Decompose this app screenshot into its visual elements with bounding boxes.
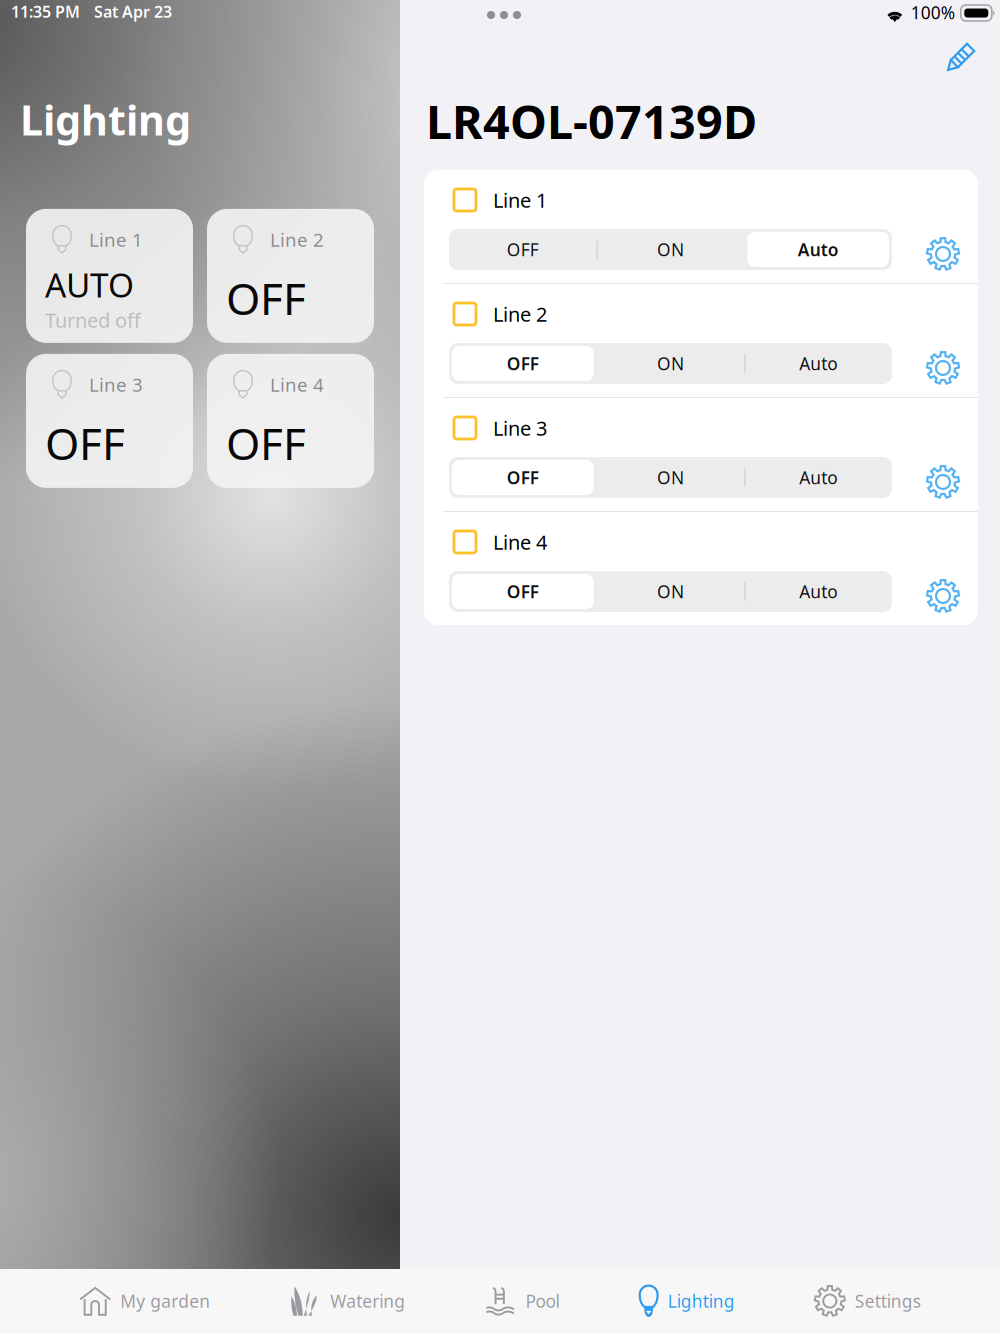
staticText: OFF xyxy=(45,414,125,472)
staticText: Auto xyxy=(798,238,839,261)
button[interactable]: Line 2 xyxy=(207,209,374,343)
button[interactable]: Line 1 xyxy=(26,209,193,343)
button[interactable]: Auto xyxy=(744,343,892,384)
staticText: Line 2 xyxy=(493,301,547,327)
staticText: Lighting xyxy=(20,92,191,147)
button[interactable]: Auto xyxy=(744,229,892,270)
button[interactable]: Edit xyxy=(939,35,983,79)
staticText: OFF xyxy=(507,238,539,261)
button[interactable]: Pool xyxy=(484,1269,559,1333)
staticText: LR4OL-07139D xyxy=(426,90,757,152)
staticText: Watering xyxy=(330,1289,405,1312)
button[interactable]: ON xyxy=(597,457,744,498)
staticText: Turned off xyxy=(45,307,141,333)
staticText: My garden xyxy=(120,1289,210,1312)
button[interactable]: OFF xyxy=(449,457,597,498)
staticText: Sat Apr 23 xyxy=(94,1,172,22)
button[interactable]: Settings for Line 1 xyxy=(926,237,960,271)
staticText: Line 3 xyxy=(89,372,143,397)
button[interactable]: Settings for Line 3 xyxy=(926,465,960,499)
staticText: OFF xyxy=(507,580,539,603)
button[interactable]: ON xyxy=(597,571,744,612)
staticText: AUTO xyxy=(45,262,134,307)
staticText: OFF xyxy=(507,352,539,375)
button[interactable]: Line 3 xyxy=(26,354,193,488)
button[interactable]: OFF xyxy=(449,571,597,612)
button[interactable]: Auto xyxy=(744,457,892,498)
button[interactable]: Settings for Line 2 xyxy=(926,351,960,385)
staticText: Settings xyxy=(855,1289,921,1312)
staticText: Line 2 xyxy=(270,227,324,252)
button[interactable]: OFF xyxy=(449,343,597,384)
button[interactable]: Settings xyxy=(814,1269,921,1333)
staticText: Auto xyxy=(799,352,837,375)
button[interactable]: ON xyxy=(597,229,744,270)
staticText: ON xyxy=(657,238,684,261)
staticText: OFF xyxy=(507,466,539,489)
button[interactable]: OFF xyxy=(449,229,597,270)
staticText: 11:35 PM xyxy=(11,1,80,22)
staticText: Line 1 xyxy=(493,187,547,213)
button[interactable]: ON xyxy=(597,343,744,384)
button[interactable]: Lighting xyxy=(639,1269,735,1333)
staticText: Line 4 xyxy=(270,372,324,397)
button[interactable]: Auto xyxy=(744,571,892,612)
button[interactable]: Watering xyxy=(289,1269,405,1333)
staticText: 100% xyxy=(911,1,955,24)
staticText: Pool xyxy=(525,1289,559,1312)
staticText: Lighting xyxy=(668,1289,735,1312)
staticText: ON xyxy=(657,352,684,375)
staticText: OFF xyxy=(226,414,306,472)
button[interactable]: Settings for Line 4 xyxy=(926,579,960,613)
button[interactable]: Line 4 xyxy=(207,354,374,488)
staticText: Line 1 xyxy=(89,227,143,252)
button[interactable]: My garden xyxy=(79,1269,210,1333)
staticText: OFF xyxy=(226,269,306,327)
staticText: Line 3 xyxy=(493,415,547,441)
staticText: ON xyxy=(657,580,684,603)
staticText: Auto xyxy=(799,466,837,489)
staticText: Line 4 xyxy=(493,529,547,555)
staticText: ON xyxy=(657,466,684,489)
staticText: Auto xyxy=(799,580,837,603)
